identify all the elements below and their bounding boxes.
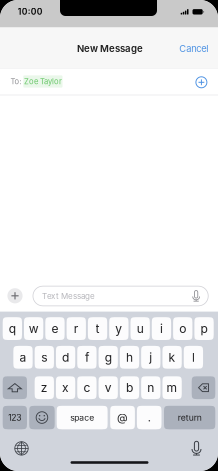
staticText: f [85, 350, 89, 364]
staticText: v [105, 380, 112, 395]
button[interactable]: m [162, 376, 182, 399]
staticText: Text Message [42, 291, 95, 301]
button[interactable]: Add attachment [4, 285, 26, 307]
staticText: d [62, 350, 69, 364]
button[interactable]: d [56, 346, 75, 369]
button[interactable]: Emoji keyboard [29, 406, 55, 429]
button[interactable]: x [56, 376, 75, 399]
staticText: b [126, 380, 133, 395]
staticText: m [167, 380, 178, 395]
staticText: t [96, 321, 100, 336]
staticText: a [19, 350, 26, 364]
staticText: w [29, 321, 39, 336]
staticText: c [83, 380, 90, 395]
button[interactable]: n [141, 376, 160, 399]
button[interactable]: c [77, 376, 96, 399]
button[interactable]: e [45, 317, 65, 340]
button[interactable]: space [57, 406, 108, 429]
staticText: r [74, 321, 79, 336]
button[interactable]: g [99, 346, 118, 369]
staticText: . [148, 411, 151, 424]
button[interactable]: r [67, 317, 86, 340]
staticText: @ [117, 411, 128, 424]
staticText: p [201, 321, 208, 336]
button[interactable]: Delete [192, 376, 215, 399]
button[interactable]: f [77, 346, 96, 369]
button[interactable]: @ [110, 406, 135, 429]
staticText: 123 [8, 412, 21, 423]
button[interactable]: q [3, 317, 22, 340]
staticText: h [126, 350, 133, 364]
button[interactable]: b [120, 376, 139, 399]
staticText: n [147, 380, 154, 395]
button[interactable]: . [137, 406, 161, 429]
button[interactable]: Shift [3, 376, 27, 399]
button[interactable]: j [141, 346, 160, 369]
button[interactable]: p [194, 317, 214, 340]
staticText: g [105, 350, 112, 364]
button[interactable]: Next keyboard [8, 435, 34, 461]
staticText: s [41, 350, 47, 364]
staticText: Zoe Taylor [24, 77, 62, 86]
staticText: 10:00 [18, 6, 43, 17]
button[interactable]: Cancel [174, 37, 214, 61]
button[interactable]: u [130, 317, 150, 340]
staticText: o [179, 321, 186, 336]
staticText: k [169, 350, 176, 364]
staticText: return [178, 412, 202, 423]
button[interactable]: h [120, 346, 139, 369]
button[interactable]: y [109, 317, 128, 340]
staticText: j [149, 350, 152, 364]
staticText: space [70, 412, 94, 423]
button[interactable]: Dictation [183, 435, 209, 461]
staticText: Cancel [179, 43, 208, 54]
staticText: q [9, 321, 16, 336]
button[interactable]: t [88, 317, 107, 340]
button[interactable]: o [173, 317, 192, 340]
button[interactable]: k [162, 346, 182, 369]
button[interactable]: s [35, 346, 54, 369]
staticText: z [41, 380, 48, 395]
staticText: To: [10, 77, 21, 86]
button[interactable]: v [99, 376, 118, 399]
button[interactable]: a [13, 346, 33, 369]
button[interactable]: Add contact [189, 70, 213, 94]
staticText: New Message [77, 43, 143, 54]
staticText: e [51, 321, 58, 336]
staticText: y [115, 321, 122, 336]
staticText: l [192, 350, 195, 364]
button[interactable]: z [35, 376, 54, 399]
button[interactable]: return [164, 406, 215, 429]
button[interactable]: l [184, 346, 203, 369]
button[interactable]: 123 [3, 406, 27, 429]
staticText: x [62, 380, 69, 395]
staticText: i [160, 321, 163, 336]
button[interactable]: Text Message [33, 286, 208, 306]
staticText: u [137, 321, 144, 336]
button[interactable]: i [152, 317, 171, 340]
button[interactable]: w [24, 317, 43, 340]
